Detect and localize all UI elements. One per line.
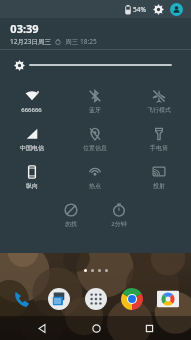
button[interactable]: 2分钟	[95, 196, 143, 234]
button[interactable]: 热点	[63, 158, 127, 196]
staticText: 54%	[133, 5, 146, 14]
button[interactable]: Photos	[155, 286, 181, 312]
button[interactable]: 飞行模式	[127, 82, 191, 120]
staticText: 位置信息	[83, 144, 107, 152]
staticText: 12月23日周三	[10, 37, 51, 46]
button[interactable]: 666666	[0, 82, 63, 120]
button[interactable]: 手电筒	[127, 120, 191, 158]
staticText: 勿扰	[65, 220, 77, 228]
staticText: 666666	[21, 106, 42, 114]
button[interactable]: Brightness	[11, 57, 27, 73]
button[interactable]: 纵向	[0, 158, 63, 196]
staticText: 飞行模式	[147, 106, 171, 114]
staticText: 中国电信	[20, 144, 44, 152]
button[interactable]: All apps	[83, 286, 109, 312]
button[interactable]: 位置信息	[63, 120, 127, 158]
button[interactable]: Chrome	[119, 286, 145, 312]
button[interactable]: User profile	[170, 3, 183, 16]
button[interactable]: Recent apps	[138, 317, 160, 339]
staticText: 手电筒	[150, 144, 168, 152]
button[interactable]: Back	[31, 317, 53, 339]
button[interactable]: 投射	[127, 158, 191, 196]
button[interactable]: 蓝牙	[63, 82, 127, 120]
button[interactable]: Phone	[10, 286, 36, 312]
button[interactable]: Home	[85, 317, 107, 339]
button[interactable]: Settings	[152, 3, 165, 16]
staticText: 热点	[89, 182, 101, 190]
button[interactable]	[30, 59, 171, 71]
staticText: 蓝牙	[89, 106, 101, 114]
button[interactable]: 中国电信	[0, 120, 63, 158]
button[interactable]: 勿扰	[47, 196, 95, 234]
staticText: 03:39	[10, 21, 39, 36]
staticText: 投射	[153, 182, 165, 190]
staticText: 2分钟	[111, 220, 127, 228]
staticText: 纵向	[26, 182, 38, 190]
button[interactable]: Messages	[46, 286, 72, 312]
staticText: 周三 18:25	[65, 37, 97, 46]
